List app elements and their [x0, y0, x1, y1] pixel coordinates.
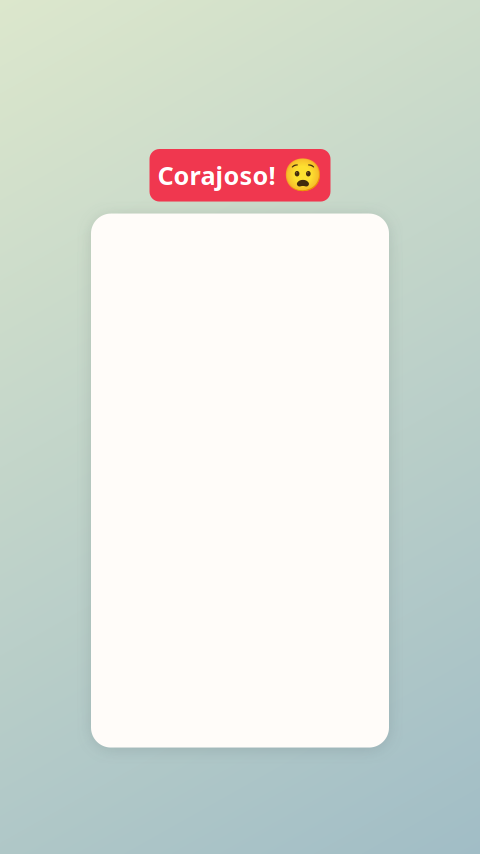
- staticText: 😧: [282, 157, 322, 194]
- staticText: Corajoso!: [157, 158, 275, 192]
- button[interactable]: Corajoso!: [149, 149, 330, 202]
